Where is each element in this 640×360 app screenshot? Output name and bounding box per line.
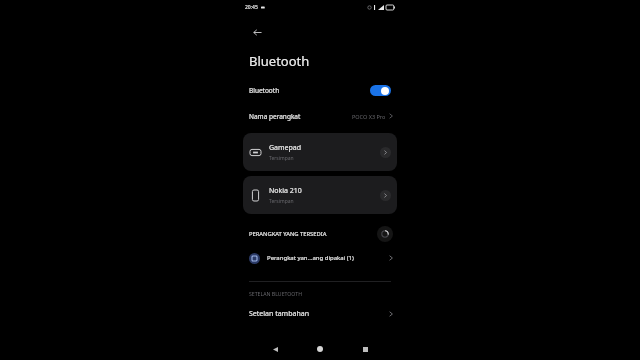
button[interactable]: Nokia 210	[243, 176, 397, 214]
staticText: Tersimpan	[269, 198, 294, 205]
staticText: Setelan tambahan	[249, 309, 309, 319]
staticText: 20:45	[245, 4, 258, 11]
button[interactable]: Recents	[356, 340, 374, 358]
staticText: Nokia 210	[269, 186, 302, 196]
staticText: Nama perangkat	[249, 112, 301, 121]
button[interactable]: Scanning	[377, 226, 393, 242]
staticText: Bluetooth	[249, 52, 310, 70]
button[interactable]: Bluetooth toggle	[370, 85, 391, 96]
button[interactable]: Back	[266, 340, 284, 358]
button[interactable]: Perangkat yan...ang dipakai (1)	[239, 247, 401, 269]
button[interactable]: Gamepad	[243, 133, 397, 171]
staticText: Perangkat yan...ang dipakai (1)	[267, 254, 354, 262]
staticText: Gamepad	[269, 143, 302, 153]
button[interactable]: Nama perangkat	[239, 106, 401, 126]
button[interactable]: Home	[311, 340, 329, 358]
staticText: SETELAN BLUETOOTH	[249, 290, 302, 297]
button[interactable]: Bluetooth	[239, 80, 401, 100]
staticText: Tersimpan	[269, 155, 294, 162]
button[interactable]: Setelan tambahan	[239, 303, 401, 325]
staticText: Bluetooth	[249, 86, 280, 95]
button[interactable]: Back	[243, 18, 271, 46]
staticText: POCO X3 Pro	[352, 113, 386, 120]
staticText: PERANGKAT YANG TERSEDIA	[249, 230, 327, 238]
button[interactable]: Device settings	[380, 190, 391, 201]
button[interactable]: Device settings	[380, 147, 391, 158]
